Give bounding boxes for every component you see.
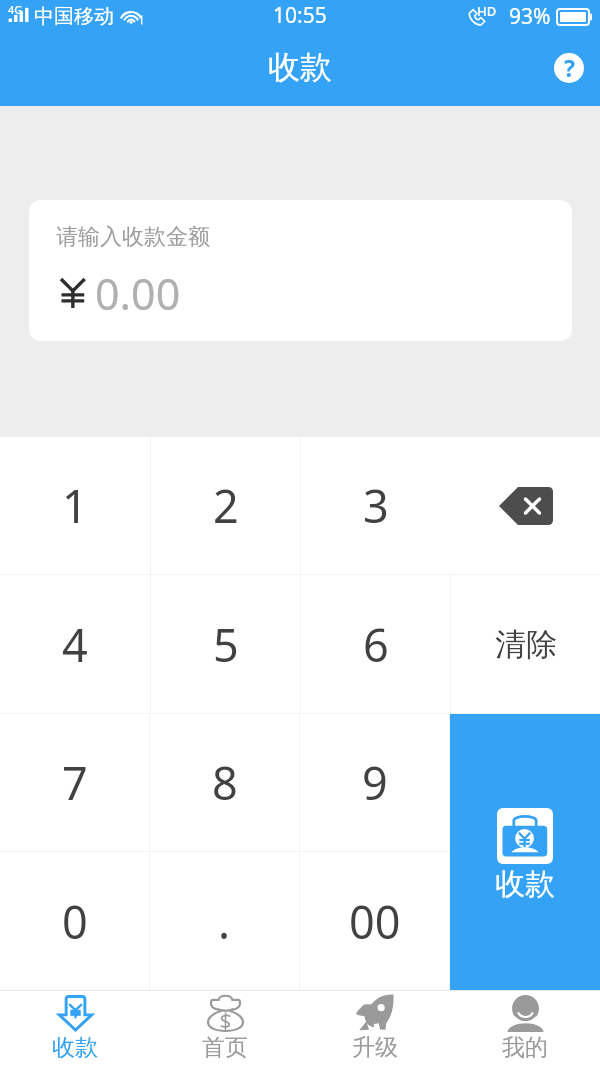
button[interactable]: 4 (0, 575, 150, 713)
staticText: 0 (62, 891, 88, 952)
button[interactable]: 升级 (300, 991, 450, 1067)
staticText: HD (477, 2, 497, 20)
staticText: 首页 (202, 1033, 248, 1062)
staticText: 9 (362, 752, 388, 813)
staticText: 收款 (268, 47, 332, 87)
staticText: . (218, 891, 231, 952)
button[interactable]: 收款 (0, 991, 150, 1067)
button[interactable]: 首页 (150, 991, 300, 1067)
button[interactable]: 00 (300, 852, 449, 990)
staticText: 3 (363, 475, 389, 536)
staticText: 4 (62, 614, 88, 675)
button[interactable]: 6 (301, 575, 450, 713)
button[interactable]: 3 (301, 437, 450, 574)
button[interactable]: 5 (151, 575, 300, 713)
button[interactable]: 9 (300, 714, 449, 851)
button[interactable]: 2 (151, 437, 300, 574)
staticText: 4G (8, 2, 23, 17)
staticText: 7 (62, 752, 88, 813)
button[interactable]: 7 (0, 714, 149, 851)
staticText: 10:55 (273, 1, 327, 30)
staticText: 中国移动 (34, 4, 114, 29)
staticText: 0.00 (95, 264, 181, 314)
button[interactable]: 1 (0, 437, 150, 574)
staticText: ? (564, 52, 575, 83)
button[interactable]: 请输入收款金额 (29, 200, 572, 341)
staticText: 请输入收款金额 (56, 223, 210, 251)
staticText: 清除 (495, 625, 557, 664)
staticText: 93% (509, 2, 551, 31)
staticText: 我的 (502, 1033, 548, 1062)
staticText: 5 (213, 614, 239, 675)
button[interactable]: 清除 (451, 575, 600, 713)
staticText: 2 (213, 475, 239, 536)
button[interactable]: 收款 (450, 714, 600, 990)
button[interactable]: 0 (0, 852, 149, 990)
button[interactable]: . (150, 852, 299, 990)
button[interactable]: Help (547, 46, 591, 90)
staticText: 6 (363, 614, 389, 675)
button[interactable]: Delete (451, 437, 600, 574)
staticText: 收款 (52, 1033, 98, 1062)
staticText: 升级 (352, 1033, 398, 1062)
button[interactable]: 8 (150, 714, 299, 851)
button[interactable]: 我的 (450, 991, 600, 1067)
staticText: 8 (212, 752, 238, 813)
staticText: 1 (62, 475, 88, 536)
staticText: 00 (349, 891, 401, 952)
staticText: 收款 (495, 865, 555, 903)
